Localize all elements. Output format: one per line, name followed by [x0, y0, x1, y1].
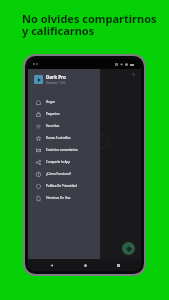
button[interactable]: ¿Cómo Funciona?: [28, 168, 100, 180]
button[interactable]: Back: [47, 261, 56, 270]
button[interactable]: Política De Privacidad: [28, 180, 100, 192]
staticText: Version 1.0.0: [46, 81, 66, 85]
button[interactable]: Danos 5 estrellas: [28, 132, 100, 144]
staticText: Términos De Uso: [46, 196, 71, 200]
button[interactable]: Envía tus comentarios: [28, 144, 100, 156]
staticText: Favoritos: [46, 124, 60, 128]
staticText: Paquetes: [46, 112, 60, 116]
button[interactable]: Add item: [122, 242, 135, 255]
button[interactable]: Hogar: [28, 96, 100, 108]
button[interactable]: Paquetes: [28, 108, 100, 120]
staticText: Comparte la App: [46, 160, 71, 164]
button[interactable]: Home: [81, 261, 90, 270]
staticText: ¿Cómo Funciona?: [46, 172, 71, 176]
staticText: Danos 5 estrellas: [46, 136, 71, 140]
staticText: Política De Privacidad: [46, 184, 77, 188]
button[interactable]: Add: [128, 69, 138, 79]
staticText: Dark Pro: [46, 74, 66, 80]
staticText: Hogar: [46, 100, 55, 104]
button[interactable]: Recent apps: [114, 261, 123, 270]
staticText: No olvides compartirnos y calificarnos: [22, 11, 157, 38]
staticText: Envía tus comentarios: [46, 148, 78, 152]
button[interactable]: Términos De Uso: [28, 192, 100, 204]
button[interactable]: Comparte la App: [28, 156, 100, 168]
button[interactable]: Favoritos: [28, 120, 100, 132]
